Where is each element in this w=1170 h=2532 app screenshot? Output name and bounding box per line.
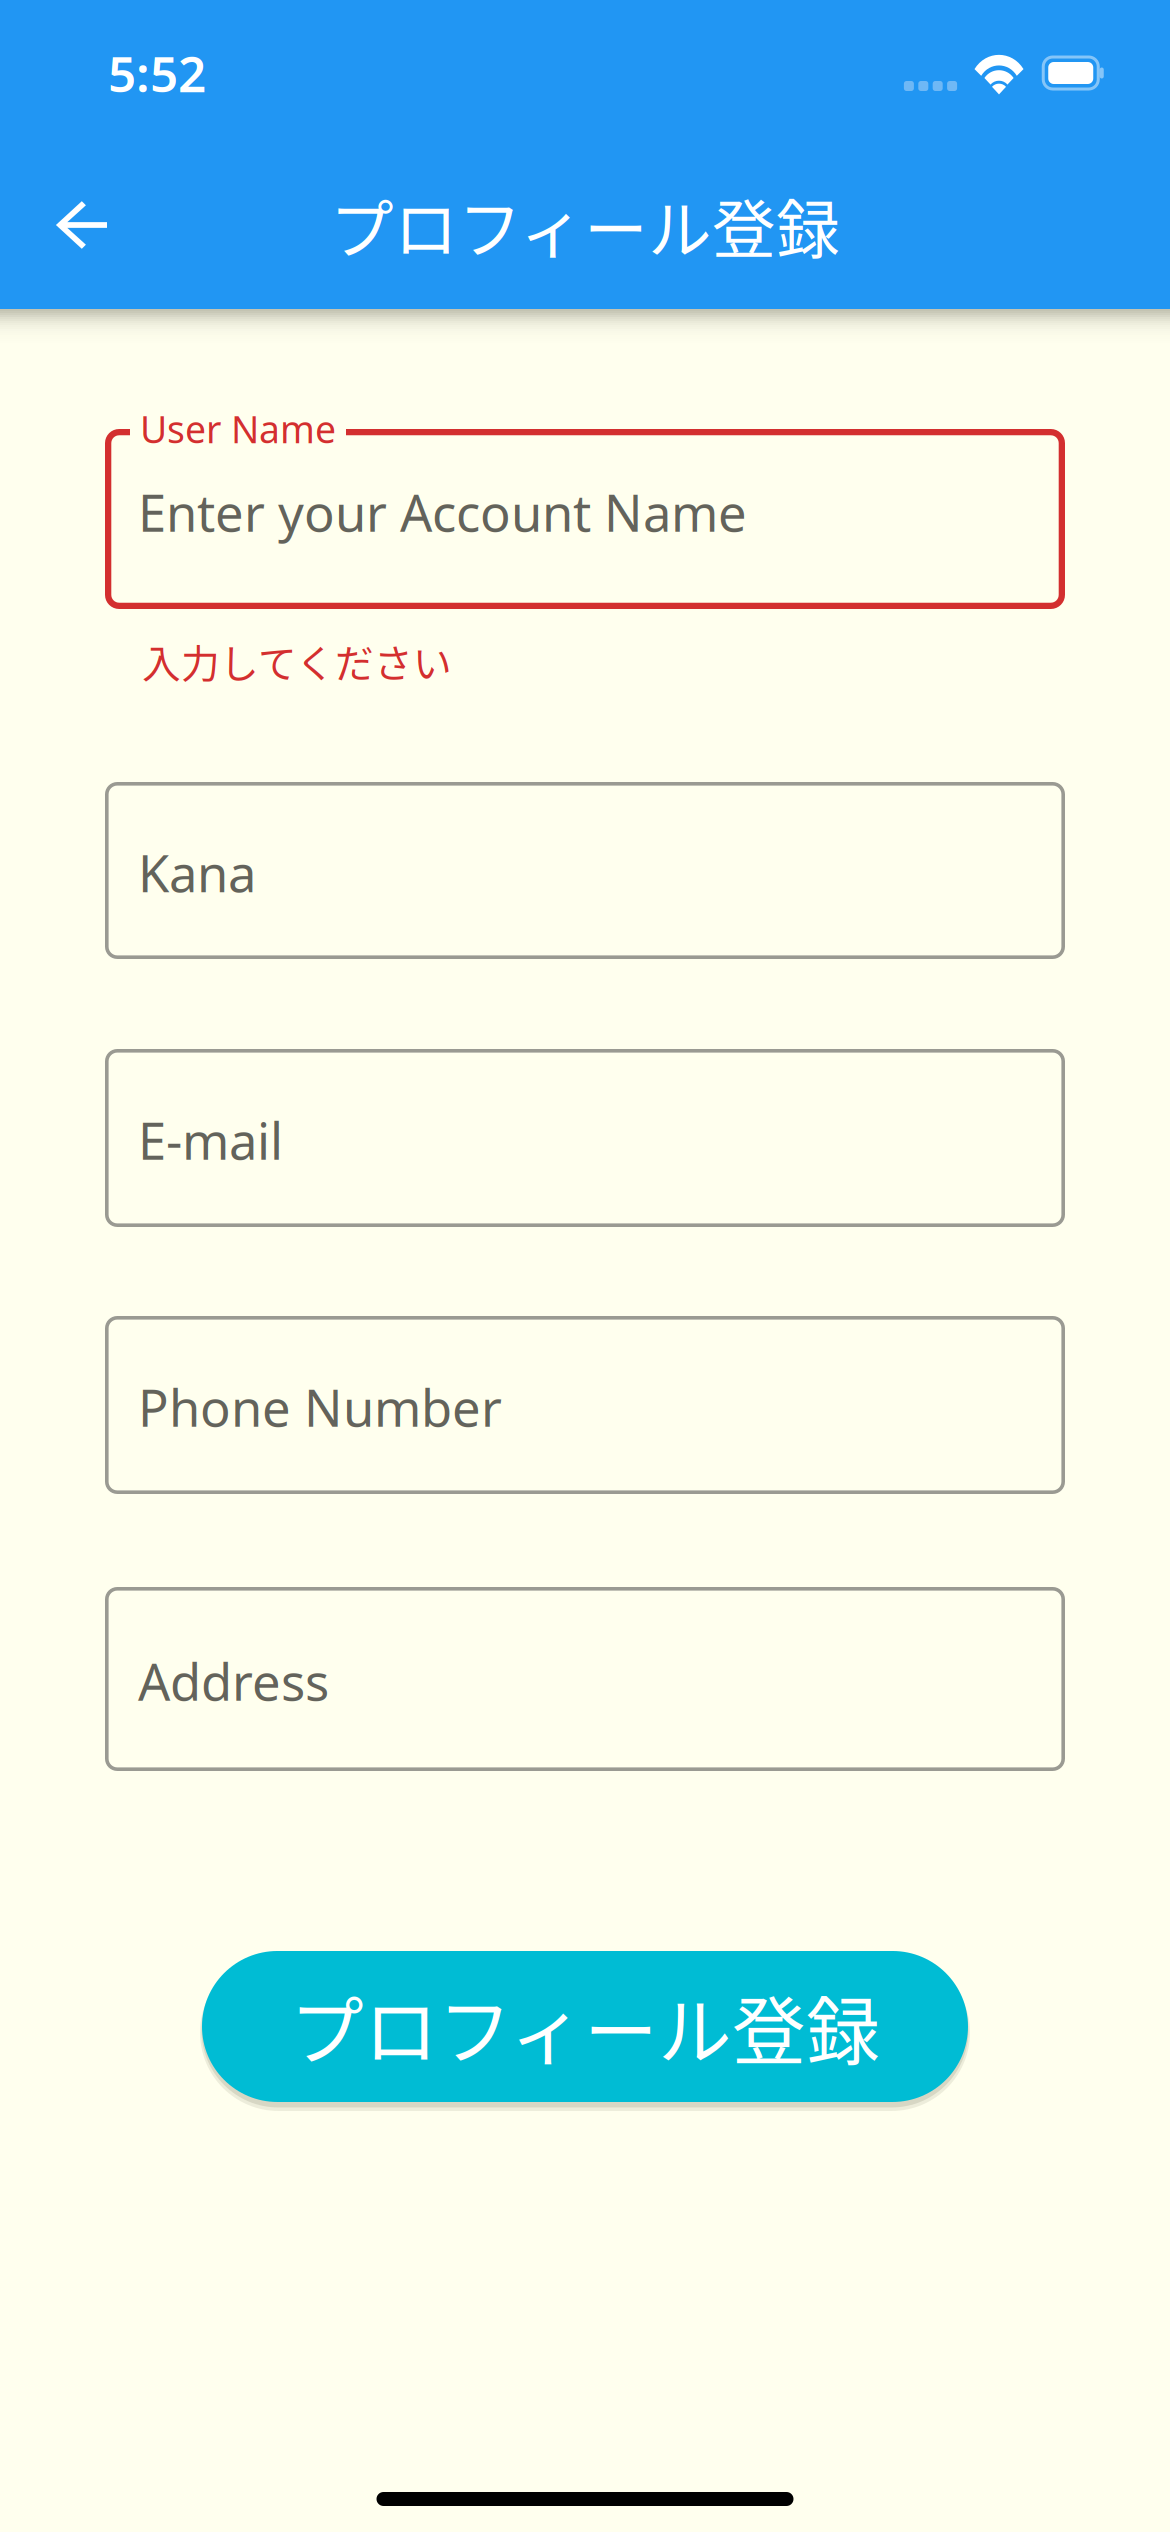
button[interactable]: Phone Number bbox=[105, 1316, 1065, 1494]
button[interactable]: Kana bbox=[105, 782, 1065, 959]
staticText: Kana bbox=[138, 839, 256, 906]
staticText: Phone Number bbox=[138, 1373, 502, 1441]
staticText: E-mail bbox=[138, 1106, 283, 1174]
staticText: 5:52 bbox=[108, 40, 206, 106]
button[interactable]: Enter your Account Name bbox=[105, 429, 1065, 609]
staticText: Address bbox=[138, 1647, 329, 1715]
staticText: Enter your Account Name bbox=[138, 478, 747, 546]
staticText: プロフィール登録 bbox=[290, 1973, 880, 2080]
button[interactable]: Address bbox=[105, 1587, 1065, 1771]
button[interactable]: E-mail bbox=[105, 1049, 1065, 1227]
staticText: プロフィール登録 bbox=[330, 179, 840, 271]
button[interactable]: Back bbox=[29, 170, 139, 280]
staticText: 入力してください bbox=[142, 633, 452, 689]
staticText: User Name bbox=[140, 404, 336, 454]
button[interactable]: プロフィール登録 bbox=[202, 1951, 968, 2102]
